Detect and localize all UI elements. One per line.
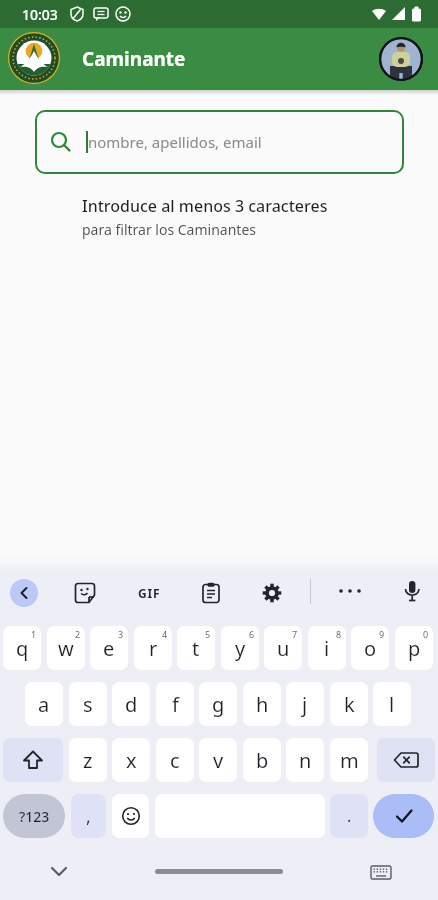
button[interactable]	[46, 864, 72, 880]
staticText: 0	[423, 628, 429, 640]
staticText: q	[16, 635, 29, 662]
staticText: k	[344, 691, 355, 718]
button[interactable]: nombre, apellidos, email	[35, 110, 404, 174]
staticText: f	[172, 691, 179, 718]
button[interactable]: r	[134, 626, 172, 670]
button[interactable]: x	[112, 738, 150, 782]
button[interactable]: y	[221, 626, 259, 670]
button[interactable]	[373, 794, 434, 838]
button[interactable]: ?123	[3, 794, 65, 838]
staticText: 3	[118, 628, 124, 640]
staticText: c	[170, 747, 180, 774]
button[interactable]: a	[25, 682, 63, 726]
staticText: y	[235, 635, 246, 662]
staticText: w	[58, 635, 74, 662]
button[interactable]	[199, 581, 223, 605]
staticText: 9	[379, 628, 385, 640]
staticText: s	[83, 691, 93, 718]
button[interactable]: f	[156, 682, 194, 726]
staticText: 2	[75, 628, 81, 640]
staticText: 4	[162, 628, 168, 640]
button[interactable]: g	[199, 682, 237, 726]
staticText: l	[389, 691, 395, 718]
button[interactable]	[7, 31, 61, 85]
staticText: nombre, apellidos, email	[88, 132, 262, 152]
button[interactable]: ,	[71, 794, 106, 838]
staticText: Introduce al menos 3 caracteres	[82, 195, 328, 217]
button[interactable]	[260, 581, 284, 605]
staticText: 10:03	[22, 5, 58, 24]
button[interactable]	[73, 581, 97, 605]
button[interactable]	[400, 579, 424, 603]
button[interactable]: c	[156, 738, 194, 782]
staticText: ?123	[19, 807, 50, 826]
staticText: e	[103, 635, 115, 662]
staticText: j	[302, 691, 308, 718]
button[interactable]: u	[264, 626, 302, 670]
button[interactable]	[337, 586, 363, 596]
button[interactable]	[377, 738, 435, 782]
staticText: o	[364, 635, 377, 662]
button[interactable]	[112, 794, 149, 838]
staticText: .	[347, 805, 352, 827]
button[interactable]	[368, 862, 394, 882]
button[interactable]: w	[47, 626, 85, 670]
staticText: m	[340, 747, 359, 774]
staticText: z	[83, 747, 93, 774]
button[interactable]: n	[286, 738, 324, 782]
button[interactable]: m	[330, 738, 368, 782]
staticText: b	[256, 747, 269, 774]
button[interactable]: e	[90, 626, 128, 670]
staticText: 1	[31, 628, 37, 640]
button[interactable]	[3, 738, 63, 782]
staticText: 6	[249, 628, 255, 640]
staticText: p	[408, 635, 421, 662]
button[interactable]	[379, 37, 423, 81]
staticText: n	[299, 747, 312, 774]
staticText: r	[149, 635, 158, 662]
staticText: t	[192, 635, 200, 662]
staticText: d	[125, 691, 138, 718]
staticText: x	[126, 747, 137, 774]
staticText: para filtrar los Caminantes	[82, 220, 256, 239]
staticText: 5	[205, 628, 211, 640]
button[interactable]: s	[69, 682, 107, 726]
button[interactable]: z	[69, 738, 107, 782]
button[interactable]	[10, 579, 38, 607]
button[interactable]: d	[112, 682, 150, 726]
staticText: h	[256, 691, 269, 718]
staticText: u	[277, 635, 290, 662]
button[interactable]: v	[199, 738, 237, 782]
button[interactable]: b	[243, 738, 281, 782]
button[interactable]: GIF	[138, 585, 161, 601]
button[interactable]: t	[177, 626, 215, 670]
button[interactable]: o	[351, 626, 389, 670]
button[interactable]: p	[395, 626, 433, 670]
button[interactable]: l	[373, 682, 411, 726]
staticText: v	[213, 747, 224, 774]
staticText: ,	[86, 804, 91, 829]
staticText: Caminante	[82, 46, 186, 72]
button[interactable]: i	[308, 626, 346, 670]
button[interactable]: .	[330, 794, 368, 838]
button[interactable]: j	[286, 682, 324, 726]
staticText: g	[212, 691, 225, 718]
button[interactable]: h	[243, 682, 281, 726]
button[interactable]: k	[330, 682, 368, 726]
staticText: 8	[336, 628, 342, 640]
staticText: 7	[292, 628, 298, 640]
staticText: i	[324, 635, 330, 662]
staticText: a	[38, 691, 50, 718]
button[interactable]: q	[3, 626, 41, 670]
